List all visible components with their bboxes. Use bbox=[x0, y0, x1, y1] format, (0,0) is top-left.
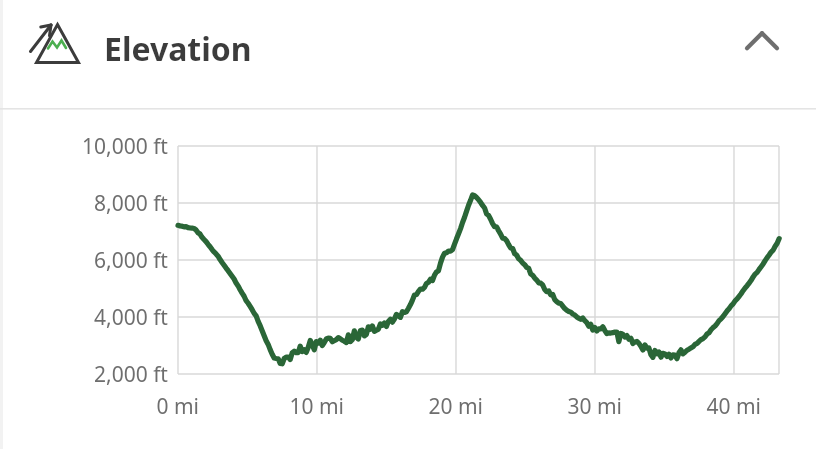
button[interactable] bbox=[0, 0, 816, 449]
button[interactable]: Elevation section header bbox=[0, 0, 816, 108]
button[interactable]: Collapse elevation section bbox=[730, 6, 794, 70]
